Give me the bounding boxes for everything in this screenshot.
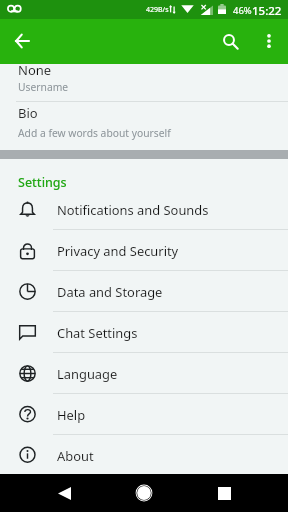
staticText: Data and Storage xyxy=(57,283,163,301)
button[interactable]: More options xyxy=(251,23,287,59)
button[interactable]: Language xyxy=(0,353,288,394)
staticText: About xyxy=(57,447,94,465)
staticText: Chat Settings xyxy=(57,324,138,342)
staticText: Settings xyxy=(18,174,67,191)
staticText: Privacy and Security xyxy=(57,242,179,260)
staticText: 46% xyxy=(233,4,252,17)
staticText: 15:22 xyxy=(252,3,282,19)
button[interactable]: Notifications and Sounds xyxy=(0,189,288,230)
staticText: None xyxy=(18,61,52,79)
button[interactable]: Search xyxy=(212,23,248,59)
button[interactable]: Back xyxy=(45,474,83,512)
button[interactable]: Home xyxy=(125,474,163,512)
staticText: 429B/s xyxy=(146,5,169,15)
button[interactable]: Chat Settings xyxy=(0,312,288,353)
button[interactable]: Recents xyxy=(205,474,243,512)
button[interactable]: Help xyxy=(0,394,288,435)
button[interactable]: Data and Storage xyxy=(0,271,288,312)
staticText: Username xyxy=(18,80,69,94)
staticText: Notifications and Sounds xyxy=(57,201,209,219)
staticText: Help xyxy=(57,406,86,424)
staticText: Bio xyxy=(18,104,38,122)
staticText: Language xyxy=(57,365,118,383)
button[interactable]: Back xyxy=(4,23,40,59)
staticText: Add a few words about yourself xyxy=(18,126,171,140)
button[interactable]: Privacy and Security xyxy=(0,230,288,271)
button[interactable]: About xyxy=(0,435,288,476)
